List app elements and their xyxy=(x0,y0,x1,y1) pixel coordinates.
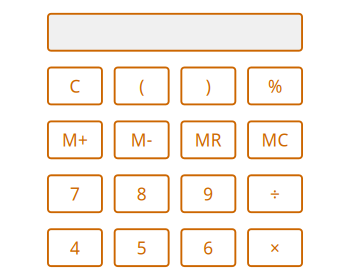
staticText: MR xyxy=(195,128,222,151)
staticText: × xyxy=(270,236,280,259)
button[interactable]: M+ xyxy=(48,121,102,158)
button[interactable]: × xyxy=(248,229,302,266)
staticText: ( xyxy=(139,74,144,97)
staticText: C xyxy=(69,74,80,97)
staticText: MC xyxy=(262,128,289,151)
button[interactable]: M- xyxy=(115,121,169,158)
staticText: 7 xyxy=(70,182,80,205)
button[interactable]: 5 xyxy=(115,229,169,266)
staticText: M- xyxy=(131,128,153,151)
staticText: 5 xyxy=(137,236,147,259)
staticText: ) xyxy=(206,74,211,97)
button[interactable]: 9 xyxy=(181,175,235,212)
button[interactable]: % xyxy=(248,67,302,104)
button[interactable]: MC xyxy=(248,121,302,158)
button[interactable]: 6 xyxy=(181,229,235,266)
button[interactable]: 7 xyxy=(48,175,102,212)
staticText: 6 xyxy=(203,236,213,259)
staticText: M+ xyxy=(62,128,88,151)
button[interactable]: 4 xyxy=(48,229,102,266)
button[interactable]: 8 xyxy=(115,175,169,212)
button[interactable]: ÷ xyxy=(248,175,302,212)
staticText: 9 xyxy=(203,182,213,205)
button[interactable]: ) xyxy=(181,67,235,104)
button[interactable]: ( xyxy=(115,67,169,104)
staticText: 8 xyxy=(137,182,147,205)
staticText: % xyxy=(268,74,282,97)
button[interactable]: MR xyxy=(181,121,235,158)
staticText: 4 xyxy=(70,236,80,259)
staticText: ÷ xyxy=(270,182,280,205)
button[interactable]: C xyxy=(48,67,102,104)
